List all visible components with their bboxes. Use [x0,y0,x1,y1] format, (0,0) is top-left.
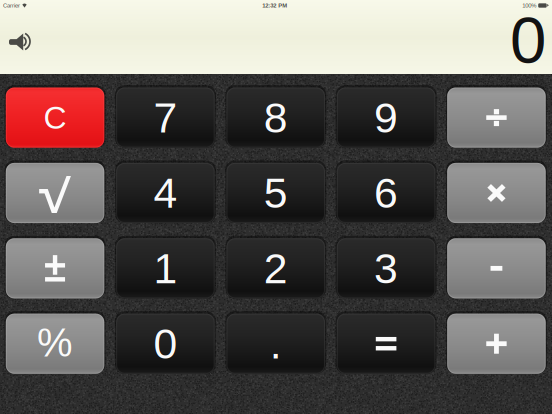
staticText: % [37,320,73,365]
staticText: 8 [264,94,288,141]
button[interactable]: Minus [447,238,546,298]
staticText: C [43,100,66,135]
staticText: 12:32 PM [262,2,287,9]
staticText: 0 [153,320,177,368]
staticText: 9 [374,94,398,141]
button[interactable]: 3 [337,238,435,298]
staticText: 3 [374,244,398,292]
button[interactable]: Square root [6,163,104,223]
button[interactable]: 6 [337,163,435,223]
button[interactable]: 1 [116,238,215,298]
button[interactable]: Percent [6,314,104,374]
button[interactable]: Plus [447,314,546,374]
button[interactable]: Multiply [447,163,546,223]
staticText: 7 [153,94,177,141]
staticText: 100% [522,2,536,9]
staticText: Carrier [3,2,20,9]
button[interactable]: Decimal point [226,314,325,374]
button[interactable]: 2 [226,238,325,298]
staticText: . [270,320,282,368]
button[interactable]: 7 [116,87,215,148]
button[interactable]: 8 [226,87,325,148]
staticText: 2 [264,244,288,292]
button[interactable]: Divide [447,87,546,148]
staticText: 5 [264,169,288,217]
staticText: 1 [153,244,177,292]
button[interactable]: Clear [6,87,104,148]
staticText: 4 [153,169,177,217]
button[interactable]: Equals [337,314,435,374]
staticText: 6 [374,169,398,217]
button[interactable]: 0 [116,314,215,374]
button[interactable]: 5 [226,163,325,223]
button[interactable]: Plus or minus [6,238,104,298]
button[interactable]: 9 [337,87,435,148]
staticText: 0 [510,3,546,76]
button[interactable]: 4 [116,163,215,223]
